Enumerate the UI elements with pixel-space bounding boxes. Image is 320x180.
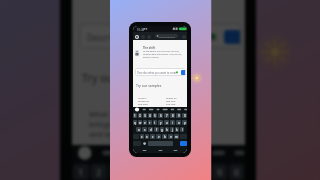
button[interactable]: 7 [164, 113, 169, 118]
button[interactable]: Invent an [176, 109, 236, 145]
button[interactable]: m [174, 134, 179, 139]
staticText: brings joy [138, 99, 150, 102]
button[interactable]: Invent an [166, 96, 185, 107]
button[interactable]: p [182, 120, 187, 125]
button[interactable]: z [140, 134, 144, 139]
staticText: 0 [234, 166, 240, 179]
staticText: g [161, 128, 163, 132]
button[interactable]: 3 [109, 164, 125, 180]
button[interactable]: More options [182, 35, 186, 39]
staticText: and light [138, 102, 148, 105]
button[interactable]: g [160, 127, 164, 132]
button[interactable]: Emoji [142, 141, 147, 146]
button[interactable]: 3 [143, 113, 147, 118]
button[interactable]: e [143, 120, 147, 125]
button[interactable]: r [148, 120, 152, 125]
button[interactable]: 0 [229, 164, 244, 180]
button[interactable]: Back [141, 148, 148, 153]
button[interactable]: Describe what you want to create [135, 68, 186, 76]
button[interactable]: k [175, 127, 179, 132]
button[interactable]: Send [224, 30, 241, 44]
staticText: 9 [178, 114, 180, 118]
button[interactable]: 1 [133, 113, 137, 118]
staticText: Try our samples [82, 70, 163, 85]
button[interactable]: Describe what you want to create [79, 23, 242, 49]
button[interactable]: Reload [141, 35, 145, 39]
button[interactable]: What is [89, 109, 149, 145]
staticText: d [150, 128, 152, 132]
button[interactable]: h [165, 127, 169, 132]
button[interactable]: j [170, 127, 174, 132]
button[interactable]: 9 [176, 113, 181, 118]
button[interactable]: 4 [148, 113, 152, 118]
button[interactable]: o [176, 120, 181, 125]
button[interactable]: t [153, 120, 157, 125]
staticText: q [134, 121, 136, 125]
button[interactable]: s [142, 127, 147, 132]
button[interactable]: Recents [172, 148, 179, 153]
staticText: a [138, 128, 140, 132]
button[interactable]: y [158, 120, 163, 125]
staticText: 9 [217, 166, 223, 179]
button[interactable]: w [138, 120, 142, 125]
button[interactable]: labs.google/fx [155, 34, 178, 38]
button[interactable]: 1 [73, 164, 89, 180]
staticText: 10:48 [137, 28, 145, 32]
staticText: 0 [184, 114, 186, 118]
button[interactable]: d [148, 127, 153, 132]
button[interactable]: x [145, 134, 149, 139]
button[interactable]: b [162, 134, 167, 139]
staticText: 3 [144, 114, 146, 118]
staticText: k [176, 128, 178, 132]
button[interactable]: c [150, 134, 155, 139]
button[interactable]: 6 [158, 113, 163, 118]
staticText: e [144, 121, 146, 125]
staticText: 5 [154, 114, 156, 118]
button[interactable]: What is [138, 96, 157, 107]
button[interactable]: 5 [153, 113, 157, 118]
button[interactable]: v [156, 134, 161, 139]
button[interactable]: q [133, 120, 137, 125]
button[interactable]: f [154, 127, 159, 132]
button[interactable]: The shift [134, 44, 186, 59]
staticText: Invent an [166, 96, 177, 99]
staticText: m [175, 135, 178, 139]
button[interactable]: Home [147, 35, 151, 39]
button[interactable]: 9 [212, 164, 227, 180]
staticText: f [156, 128, 157, 132]
staticText: s [144, 128, 146, 132]
button[interactable]: 0 [182, 113, 187, 118]
button[interactable]: Account [135, 35, 139, 39]
button[interactable]: u [164, 120, 169, 125]
button[interactable]: 2 [138, 113, 142, 118]
staticText: Describe what you want to create [137, 71, 178, 75]
staticText: b [164, 135, 166, 139]
button[interactable]: i [170, 120, 175, 125]
button[interactable]: n [168, 134, 173, 139]
staticText: brings joy [89, 119, 125, 129]
button[interactable]: l [180, 127, 184, 132]
button[interactable]: Send [181, 70, 186, 75]
button[interactable]: Enter [180, 141, 187, 146]
staticText: labs.google/fx [159, 35, 175, 38]
button[interactable]: 2 [91, 164, 107, 180]
staticText: x [146, 135, 148, 139]
button[interactable]: 8 [170, 113, 175, 118]
staticText: w [139, 121, 142, 125]
staticText: you love [176, 129, 206, 139]
button[interactable]: Home [157, 148, 164, 153]
button[interactable]: a [136, 127, 141, 132]
